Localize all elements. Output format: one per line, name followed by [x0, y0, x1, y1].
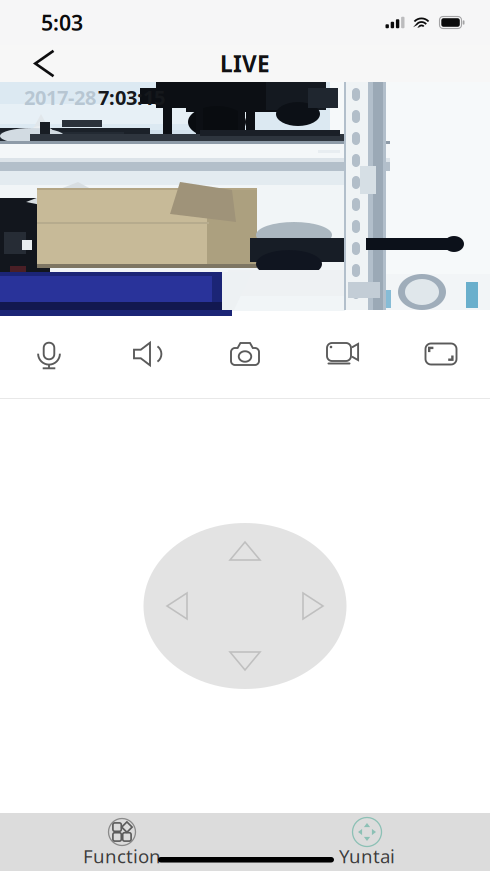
button[interactable]: Record [294, 341, 392, 367]
staticText: Yuntai [339, 844, 395, 868]
button[interactable]: Full screen [392, 341, 490, 367]
staticText: Function [83, 844, 161, 868]
button[interactable]: Yuntai [307, 817, 427, 865]
staticText: 7:03:15 [98, 84, 165, 111]
button[interactable]: Back [21, 45, 68, 81]
button[interactable]: Snapshot [196, 341, 294, 367]
button[interactable]: Speaker [98, 341, 196, 367]
staticText: 2017-28 [24, 84, 96, 111]
button[interactable]: Microphone [0, 338, 98, 369]
staticText: LIVE [220, 48, 270, 78]
button[interactable]: Function [62, 817, 182, 865]
staticText: 5:03 [41, 8, 83, 37]
